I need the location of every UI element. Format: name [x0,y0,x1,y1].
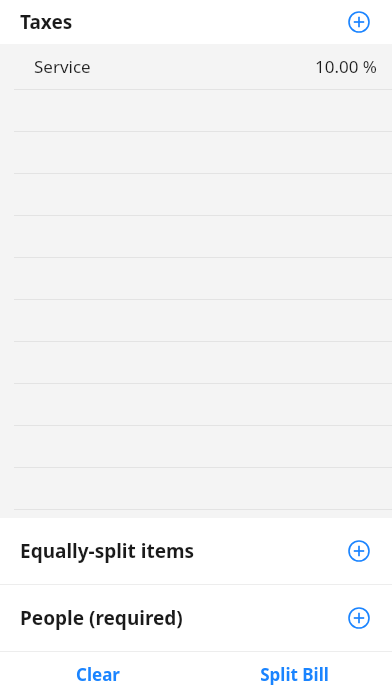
button[interactable]: Add person [342,601,376,635]
staticText: People (required) [20,605,183,631]
button[interactable]: Service [0,44,392,89]
button[interactable]: Split Bill [196,652,392,696]
button[interactable]: Add equally-split item [342,534,376,568]
staticText: 10.00 % [315,55,377,78]
staticText: Equally-split items [20,538,195,564]
button[interactable]: Equally-split items [0,518,392,584]
button[interactable]: Clear [0,652,196,696]
staticText: Taxes [20,9,73,35]
button[interactable]: Add tax [342,5,376,39]
button[interactable]: People (required) [0,585,392,651]
staticText: Service [34,55,91,78]
staticText: Clear [76,663,120,686]
button[interactable]: Taxes [0,0,392,44]
staticText: Split Bill [260,663,329,686]
